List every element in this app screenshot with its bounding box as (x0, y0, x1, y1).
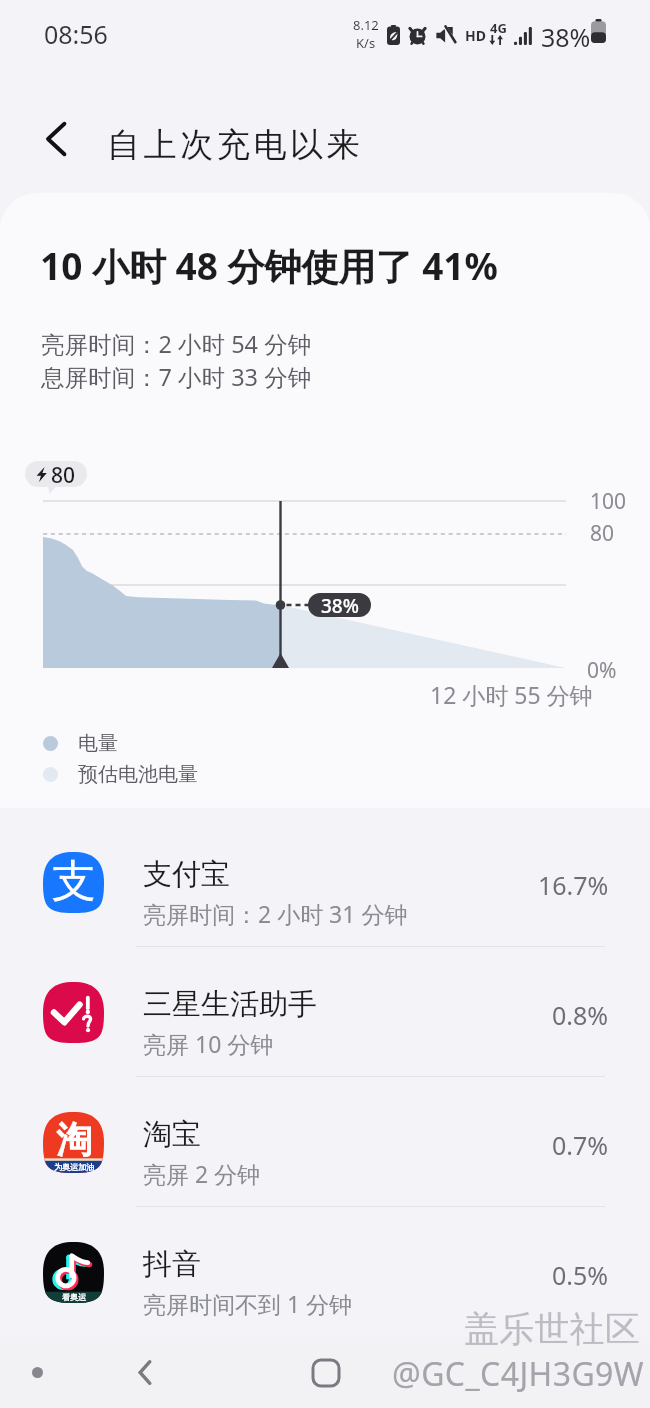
staticText: 16.7% (538, 868, 609, 902)
button[interactable]: 看奥运 (0, 1207, 650, 1337)
staticText: 抖音 (143, 1246, 201, 1283)
staticText: 亮屏 2 分钟 (143, 1158, 261, 1189)
staticText: 4G (490, 19, 507, 37)
staticText: 看奥运 (62, 1292, 86, 1302)
button[interactable]: Recents (9, 1337, 65, 1408)
staticText: @GC_C4JH3G9W (392, 1352, 644, 1396)
staticText: 亮屏时间：2 小时 54 分钟 (41, 328, 312, 360)
staticText: 淘 (56, 1117, 92, 1162)
staticText: 三星生活助手 (143, 986, 317, 1023)
button[interactable]: 支 (0, 817, 650, 947)
staticText: 80 (51, 461, 76, 487)
staticText: 亮屏时间：2 小时 31 分钟 (143, 898, 408, 929)
staticText: 亮屏 10 分钟 (143, 1028, 274, 1059)
staticText: 8.12 (353, 16, 379, 34)
staticText: 支 (52, 854, 96, 909)
staticText: K/s (356, 34, 376, 52)
button[interactable]: 淘 (0, 1077, 650, 1207)
staticText: 0.7% (552, 1128, 609, 1162)
staticText: 0.8% (552, 998, 609, 1032)
staticText: 预估电池电量 (78, 762, 198, 787)
staticText: 电量 (78, 731, 118, 756)
staticText: HD (465, 26, 486, 45)
staticText: 80 (590, 519, 615, 548)
staticText: 38% (321, 593, 359, 617)
staticText: 自上次充电以来 (107, 124, 364, 166)
staticText: 100 (590, 487, 627, 516)
staticText: 为奥运加油 (54, 1162, 94, 1172)
staticText: 息屏时间：7 小时 33 分钟 (41, 361, 312, 393)
button[interactable]: Back (117, 1337, 173, 1408)
staticText: 0% (587, 656, 617, 685)
button[interactable]: Back (27, 110, 85, 168)
staticText: 亮屏时间不到 1 分钟 (143, 1288, 353, 1319)
staticText: 支付宝 (143, 856, 230, 893)
staticText: 盖乐世社区 (464, 1307, 640, 1351)
staticText: 38% (541, 20, 591, 54)
staticText: 10 小时 48 分钟使用了 41% (40, 240, 498, 291)
button[interactable]: 三星生活助手 (0, 947, 650, 1077)
staticText: 0.5% (552, 1258, 609, 1292)
button[interactable]: Home (298, 1337, 354, 1408)
staticText: 08:56 (44, 17, 108, 51)
staticText: 淘宝 (143, 1116, 201, 1153)
staticText: 12 小时 55 分钟 (430, 679, 593, 710)
